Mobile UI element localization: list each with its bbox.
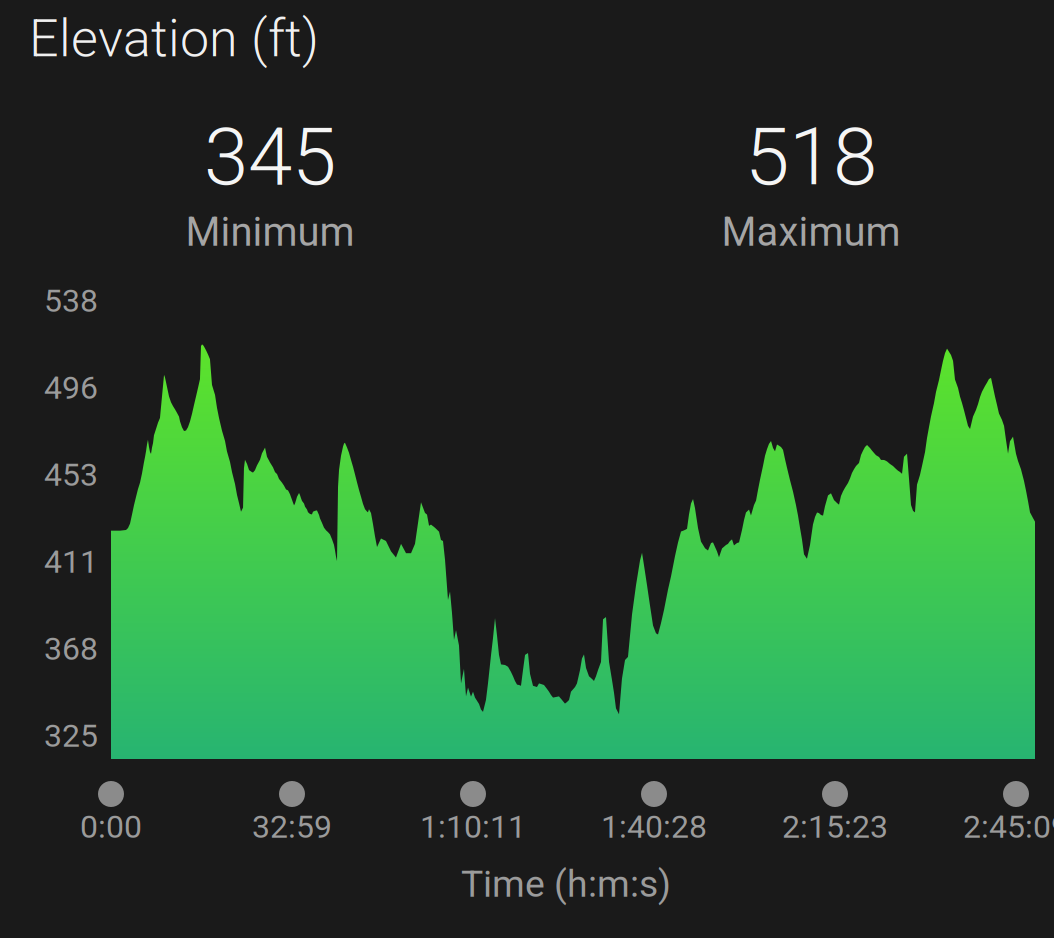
staticText: Minimum (185, 209, 354, 256)
button[interactable]: 345 (60, 110, 480, 256)
staticText: 325 (44, 717, 98, 754)
staticText: 496 (44, 369, 98, 406)
staticText: 1:10:11 (420, 808, 526, 845)
button[interactable]: 518 (601, 110, 1021, 256)
staticText: 345 (204, 110, 336, 204)
button[interactable]: Elevation chart (111, 302, 1035, 759)
staticText: 2:45:09 (963, 808, 1054, 845)
staticText: 0:00 (80, 808, 142, 845)
staticText: Elevation (ft) (29, 8, 319, 69)
staticText: 518 (745, 110, 877, 204)
staticText: 411 (44, 543, 98, 580)
staticText: 368 (44, 630, 98, 667)
staticText: 538 (44, 282, 98, 319)
staticText: 2:15:23 (782, 808, 888, 845)
staticText: 453 (44, 456, 98, 493)
staticText: 1:40:28 (601, 808, 707, 845)
staticText: Time (h:m:s) (461, 862, 671, 906)
staticText: Maximum (721, 209, 900, 256)
staticText: 32:59 (252, 808, 332, 845)
